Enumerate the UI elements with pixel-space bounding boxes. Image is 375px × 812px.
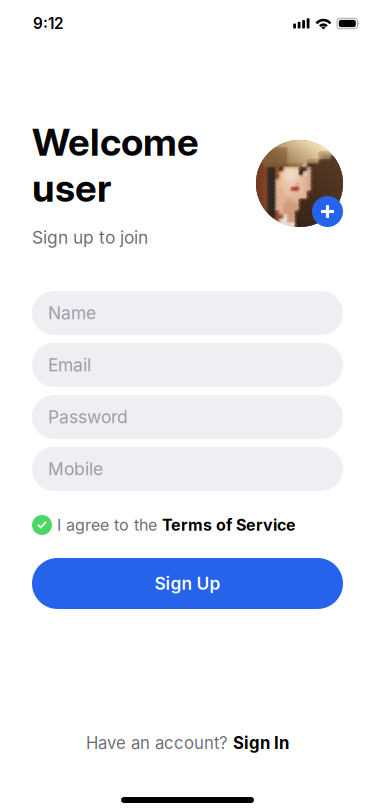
button[interactable]: I agree to the <box>0 515 375 535</box>
staticText: Have an account? <box>86 733 228 753</box>
staticText: Sign up to join <box>32 227 148 248</box>
staticText: Terms of Service <box>162 515 296 535</box>
staticText: Sign In <box>233 733 289 753</box>
staticText: user <box>32 165 111 211</box>
button[interactable]: Sign Up <box>32 558 343 609</box>
staticText: 9:12 <box>33 14 64 33</box>
button[interactable]: Have an account? <box>0 728 375 758</box>
staticText: Password <box>48 406 128 427</box>
staticText: Mobile <box>48 458 103 479</box>
button[interactable]: Email <box>32 343 343 387</box>
staticText: Sign Up <box>154 573 220 594</box>
button[interactable]: Mobile <box>32 447 343 491</box>
button[interactable]: Name <box>32 291 343 335</box>
staticText: Welcome <box>32 119 199 165</box>
staticText: Name <box>48 302 96 323</box>
staticText: Email <box>48 354 91 375</box>
button[interactable]: Password <box>32 395 343 439</box>
button[interactable]: Add photo <box>312 196 343 227</box>
staticText: I agree to the <box>57 515 162 535</box>
